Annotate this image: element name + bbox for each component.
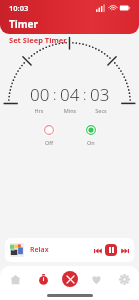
staticText: 04: [60, 83, 80, 106]
staticText: 00: [30, 83, 50, 106]
button[interactable]: Home: [6, 270, 24, 288]
staticText: Hrs: [27, 107, 51, 114]
button[interactable]: Close: [62, 271, 78, 287]
staticText: :: [83, 85, 87, 104]
staticText: 10:03: [9, 3, 29, 13]
staticText: On: [87, 139, 95, 146]
button[interactable]: Timer: [34, 270, 52, 288]
staticText: Relax: [30, 245, 49, 255]
button[interactable]: Next: [119, 245, 130, 256]
staticText: Mins: [58, 107, 82, 114]
staticText: Set Sleep Timer: [9, 35, 67, 45]
button[interactable]: Off: [40, 123, 58, 147]
button[interactable]: Pause: [105, 244, 117, 256]
button[interactable]: Previous: [92, 245, 103, 256]
button[interactable]: Favourites: [87, 270, 105, 288]
staticText: :: [53, 85, 57, 104]
staticText: Secs: [89, 107, 113, 114]
button[interactable]: On: [82, 123, 100, 147]
button[interactable]: Relax: [5, 238, 134, 262]
staticText: 03: [90, 83, 110, 106]
button[interactable]: Settings: [115, 270, 133, 288]
staticText: Off: [45, 139, 54, 146]
staticText: Timer: [9, 17, 38, 31]
